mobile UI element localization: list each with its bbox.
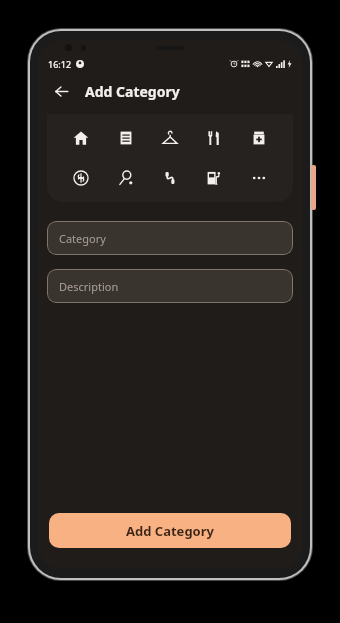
button[interactable]: Description xyxy=(47,269,293,303)
staticText: Add Category xyxy=(85,82,180,101)
button[interactable]: Bills xyxy=(110,122,142,154)
button[interactable]: Add Category xyxy=(49,513,291,548)
button[interactable]: Back xyxy=(45,75,77,107)
button[interactable]: Home xyxy=(65,122,97,154)
staticText: 16:12 xyxy=(48,58,72,70)
button[interactable]: Clothes xyxy=(154,122,186,154)
button[interactable]: Health xyxy=(243,122,275,154)
button[interactable]: Food xyxy=(198,122,230,154)
button[interactable]: Money xyxy=(65,162,97,194)
button[interactable]: More xyxy=(243,162,275,194)
staticText: Add Category xyxy=(126,522,214,540)
button[interactable]: Sports xyxy=(110,162,142,194)
button[interactable]: Music xyxy=(154,162,186,194)
button[interactable]: Category xyxy=(47,221,293,255)
staticText: Description xyxy=(59,279,119,294)
button[interactable]: Fuel xyxy=(198,162,230,194)
staticText: Category xyxy=(59,231,106,246)
